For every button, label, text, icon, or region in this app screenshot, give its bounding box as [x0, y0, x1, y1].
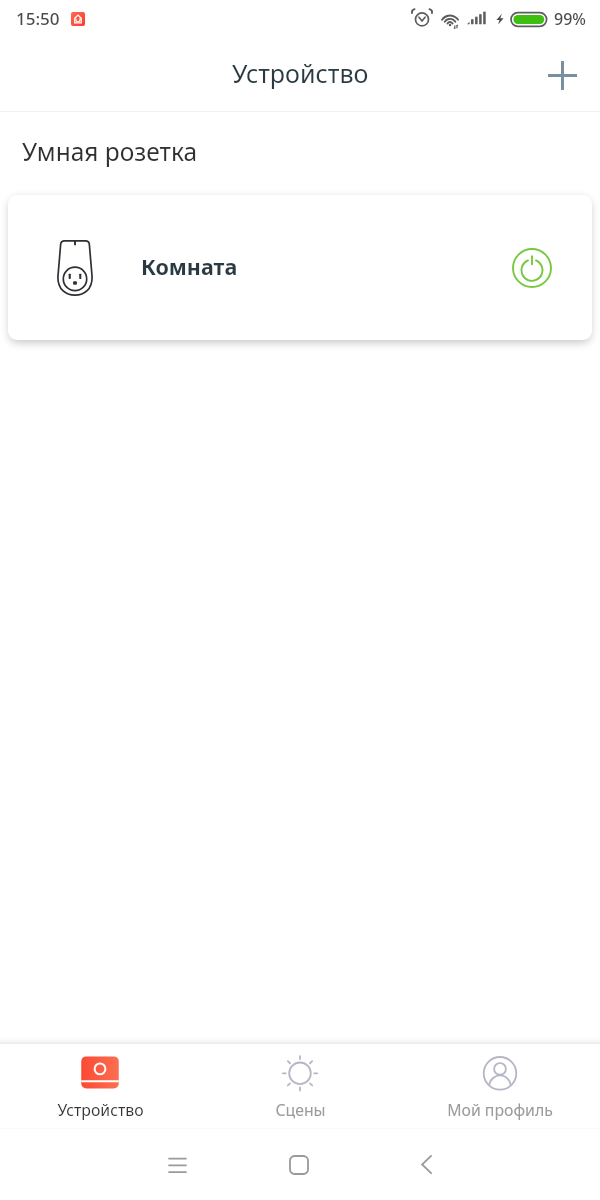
button[interactable]: Back	[396, 1129, 456, 1200]
button[interactable]: Home	[269, 1129, 329, 1200]
button[interactable]: Комната	[8, 195, 592, 340]
staticText: Устройство	[232, 56, 369, 90]
staticText: Мой профиль	[447, 1099, 553, 1121]
staticText: Устройство	[57, 1099, 144, 1121]
button[interactable]: Сцены	[200, 1044, 400, 1128]
button[interactable]: Устройство	[0, 1044, 200, 1128]
staticText: Умная розетка	[22, 135, 198, 168]
staticText: Комната	[141, 252, 238, 281]
staticText: Сцены	[275, 1099, 326, 1121]
button[interactable]: Recents	[147, 1129, 207, 1200]
button[interactable]: Power toggle	[508, 244, 556, 292]
button[interactable]: Мой профиль	[400, 1044, 600, 1128]
button[interactable]: Add device	[543, 56, 581, 94]
staticText: 99%	[554, 8, 586, 30]
staticText: 15:50	[16, 7, 60, 30]
